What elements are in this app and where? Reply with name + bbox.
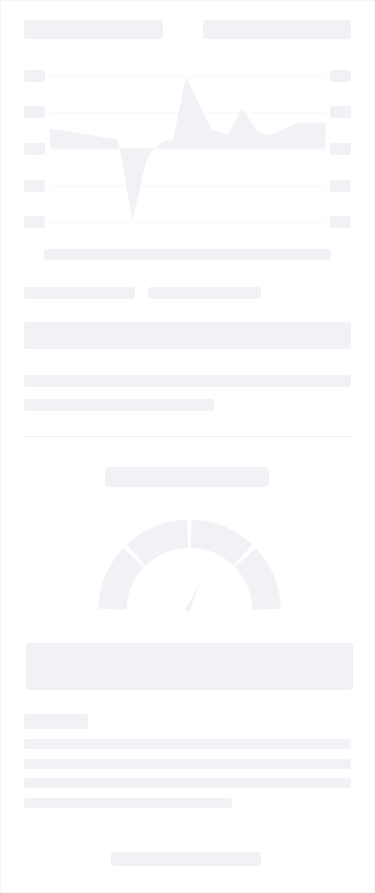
button[interactable]: Score gauge [96, 516, 283, 613]
button[interactable]: Performance chart [0, 60, 375, 230]
